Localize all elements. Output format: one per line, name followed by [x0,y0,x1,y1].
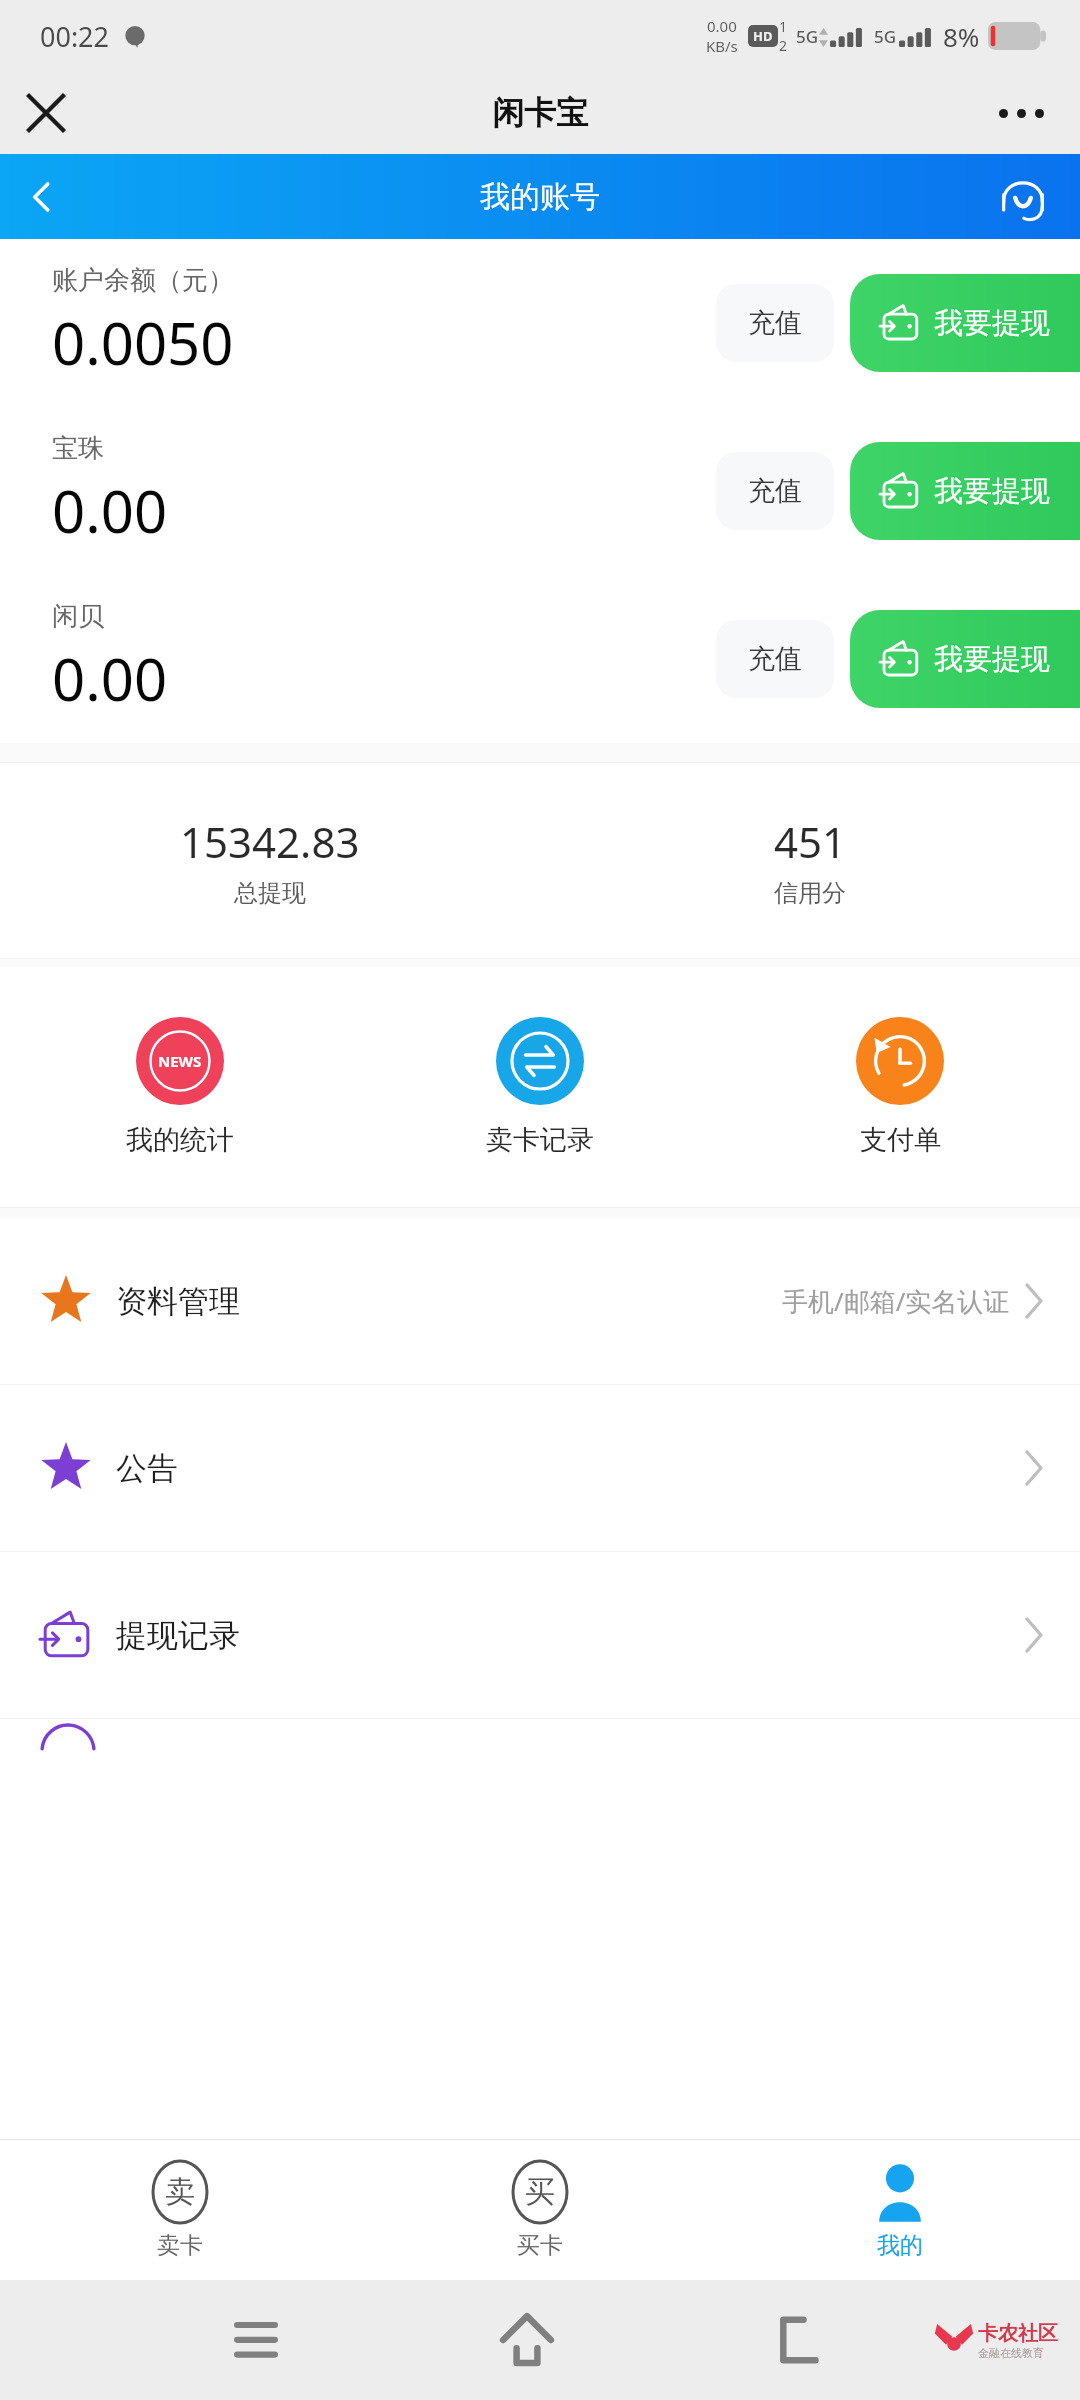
button[interactable]: 我的 [720,2140,1080,2280]
button[interactable]: 我要提现 [850,274,1080,372]
button[interactable]: Customer service [992,166,1054,228]
staticText: 卖卡 [157,2231,203,2260]
staticText: 我要提现 [934,473,1050,510]
button[interactable]: 支付单 [720,967,1080,1207]
staticText: 提现记录 [116,1616,240,1655]
staticText: 买 [525,2173,555,2211]
staticText: 2 [779,36,788,55]
button[interactable]: Back [10,165,74,229]
staticText: 我的统计 [126,1123,234,1157]
staticText: 买卡 [517,2231,563,2260]
staticText: 我的 [877,2231,923,2260]
staticText: 5G [874,25,897,48]
staticText: 总提现 [234,878,306,908]
button[interactable]: 充值 [716,620,834,698]
staticText: 信用分 [774,878,846,908]
button[interactable]: 提现记录 [0,1552,1080,1718]
button[interactable]: 451 [540,763,1080,958]
button[interactable]: 我要提现 [850,442,1080,540]
staticText: 5G [796,25,819,48]
button[interactable]: Back [762,2304,834,2376]
staticText: 00:22 [40,18,110,55]
button[interactable]: Home [491,2304,563,2376]
button[interactable]: 资料管理 [0,1218,1080,1384]
staticText: 8% [943,19,980,54]
staticText: 0.0050 [52,303,234,382]
staticText: 卡农社区 [978,2321,1058,2346]
button[interactable]: 卖 [0,2140,360,2280]
staticText: 我的账号 [480,178,600,216]
button[interactable]: More options [986,78,1056,148]
staticText: 充值 [748,474,802,508]
button[interactable]: Recent apps [220,2304,292,2376]
staticText: 闲贝 [52,600,104,633]
staticText: 充值 [748,306,802,340]
staticText: 0.00 [707,16,737,36]
button[interactable]: 充值 [716,452,834,530]
staticText: 充值 [748,642,802,676]
staticText: 金融在线教育 [978,2346,1044,2360]
button[interactable]: 卖卡记录 [360,967,720,1207]
staticText: 支付单 [860,1123,941,1157]
staticText: 账户余额（元） [52,264,234,297]
staticText: 卖 [165,2173,195,2211]
staticText: NEWS [158,1051,202,1071]
button[interactable]: 充值 [716,284,834,362]
button[interactable]: NEWS [0,967,360,1207]
staticText: 手机/邮箱/实名认证 [782,1283,1010,1319]
staticText: 1 [779,17,788,36]
button[interactable]: Close [14,81,78,145]
button[interactable]: 公告 [0,1385,1080,1551]
staticText: 我要提现 [934,641,1050,678]
button[interactable]: 买 [360,2140,720,2280]
staticText: 宝珠 [52,432,104,465]
staticText: 0.00 [52,639,168,718]
staticText: 闲卡宝 [492,93,588,133]
button[interactable]: 15342.83 [0,763,540,958]
staticText: 我要提现 [934,305,1050,342]
staticText: KB/s [706,36,738,56]
staticText: 卖卡记录 [486,1123,594,1157]
staticText: 0.00 [52,471,168,550]
staticText: 公告 [116,1449,178,1488]
button[interactable]: 我要提现 [850,610,1080,708]
staticText: HD [753,27,773,45]
staticText: 资料管理 [116,1282,240,1321]
staticText: 451 [774,813,847,870]
staticText: 15342.83 [180,813,360,870]
